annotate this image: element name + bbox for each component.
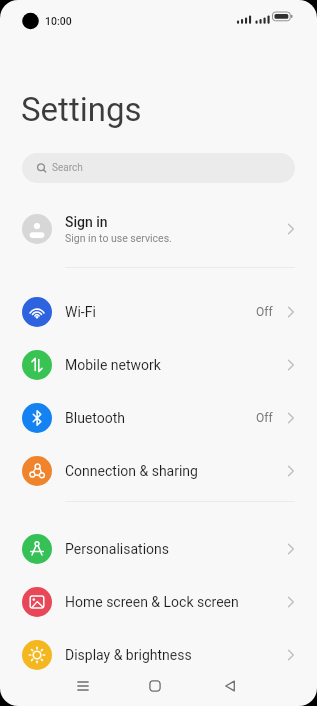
staticText: 10:00 xyxy=(45,15,72,27)
button[interactable]: Display & brightness xyxy=(0,628,317,681)
staticText: Personalisations xyxy=(65,541,287,557)
staticText: Settings xyxy=(21,90,142,129)
button[interactable] xyxy=(130,665,180,706)
button[interactable]: Home screen & Lock screen xyxy=(0,575,317,628)
button[interactable]: Search xyxy=(22,153,295,183)
button[interactable]: Mobile network xyxy=(0,338,317,391)
staticText: Off xyxy=(256,411,273,425)
staticText: Connection & sharing xyxy=(65,463,287,479)
button[interactable] xyxy=(58,665,108,706)
button[interactable] xyxy=(205,665,255,706)
button[interactable]: Wi-Fi xyxy=(0,285,317,338)
staticText: Mobile network xyxy=(65,357,287,373)
staticText: Sign in xyxy=(65,214,108,230)
button[interactable]: Connection & sharing xyxy=(0,444,317,497)
staticText: Bluetooth xyxy=(65,410,256,426)
staticText: Search xyxy=(52,162,83,174)
staticText: Home screen & Lock screen xyxy=(65,594,287,610)
button[interactable]: Bluetooth xyxy=(0,391,317,444)
staticText: Sign in to use services. xyxy=(65,232,172,244)
staticText: Wi-Fi xyxy=(65,304,256,320)
staticText: Display & brightness xyxy=(65,647,287,663)
staticText: Off xyxy=(256,305,273,319)
button[interactable]: Personalisations xyxy=(0,522,317,575)
button[interactable]: Sign in xyxy=(0,206,317,252)
